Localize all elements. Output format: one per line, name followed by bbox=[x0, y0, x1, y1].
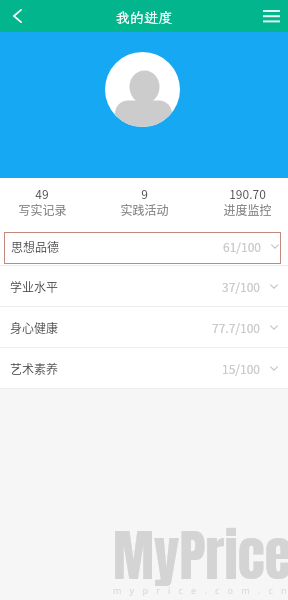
staticText: 实践活动 bbox=[120, 201, 169, 218]
staticText: 37/100 bbox=[222, 278, 261, 295]
button[interactable]: 身心健康 bbox=[0, 307, 288, 348]
staticText: 9 bbox=[141, 185, 148, 202]
staticText: 77.7/100 bbox=[212, 319, 261, 336]
button[interactable]: 学业水平 bbox=[0, 266, 288, 307]
staticText: 190.70 bbox=[229, 185, 266, 202]
button[interactable]: 190.70 bbox=[199, 178, 288, 232]
button[interactable]: 49 bbox=[0, 178, 90, 232]
button[interactable]: Menu bbox=[254, 0, 288, 32]
staticText: 15/100 bbox=[222, 360, 261, 377]
staticText: 艺术素养 bbox=[10, 360, 59, 377]
staticText: myprice.com.cn bbox=[113, 584, 288, 596]
staticText: 49 bbox=[35, 185, 49, 202]
staticText: MyPrice bbox=[113, 514, 288, 597]
button[interactable]: 9 bbox=[96, 178, 192, 232]
staticText: 61/100 bbox=[223, 238, 262, 255]
button[interactable]: Back bbox=[0, 0, 34, 32]
staticText: 思想品德 bbox=[11, 238, 60, 255]
staticText: 进度监控 bbox=[223, 201, 272, 218]
button[interactable]: 思想品德 bbox=[4, 232, 281, 264]
button[interactable]: Profile photo bbox=[105, 52, 180, 127]
staticText: 写实记录 bbox=[18, 201, 67, 218]
staticText: 我的进度 bbox=[115, 8, 173, 27]
button[interactable]: 艺术素养 bbox=[0, 348, 288, 389]
staticText: 学业水平 bbox=[10, 278, 59, 295]
staticText: 身心健康 bbox=[10, 319, 59, 336]
